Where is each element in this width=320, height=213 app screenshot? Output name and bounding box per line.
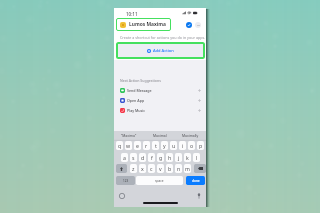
button[interactable]: v [157, 164, 164, 173]
staticText: h [168, 154, 172, 161]
staticText: Maximally [182, 133, 199, 138]
button[interactable]: k [184, 153, 191, 162]
staticText: e [136, 142, 139, 149]
staticText: f [151, 154, 153, 161]
staticText: v [159, 165, 162, 172]
staticText: Open App [127, 98, 145, 103]
button[interactable]: f [148, 153, 155, 162]
staticText: a [123, 154, 126, 161]
button[interactable]: Dictation [196, 193, 202, 199]
button[interactable]: Lumos Maxima [116, 18, 171, 31]
button[interactable]: “Maxima” [114, 131, 144, 140]
button[interactable]: d [139, 153, 146, 162]
button[interactable]: Shift [116, 164, 127, 173]
button[interactable]: q [116, 141, 123, 150]
button[interactable]: Send Message [120, 85, 201, 96]
button[interactable]: done [186, 176, 205, 185]
button[interactable]: x [139, 164, 146, 173]
button[interactable]: u [170, 141, 177, 150]
staticText: u [172, 142, 176, 149]
button[interactable]: o [188, 141, 195, 150]
staticText: “Maxima” [121, 133, 137, 138]
button[interactable]: s [130, 153, 137, 162]
staticText: l [196, 154, 198, 161]
button[interactable]: Backspace [194, 164, 206, 173]
button[interactable]: r [143, 141, 150, 150]
staticText: y [163, 142, 166, 149]
button[interactable]: n [175, 164, 182, 173]
button[interactable]: i [179, 141, 186, 150]
button[interactable]: c [148, 164, 155, 173]
button[interactable]: e [134, 141, 141, 150]
button[interactable]: Play Music [120, 105, 201, 116]
staticText: space [155, 179, 164, 183]
staticText: 10:11 [126, 11, 138, 17]
staticText: 123 [123, 179, 129, 183]
staticText: j [178, 154, 180, 161]
button[interactable]: t [152, 141, 159, 150]
staticText: m [185, 165, 190, 172]
button[interactable]: h [166, 153, 173, 162]
staticText: i [182, 142, 184, 149]
staticText: t [155, 142, 157, 149]
staticText: z [132, 165, 135, 172]
staticText: Create a shortcut for actions you do in … [120, 35, 208, 40]
button[interactable]: z [130, 164, 137, 173]
button[interactable]: Open App [120, 95, 201, 106]
button[interactable]: w [125, 141, 132, 150]
staticText: Add Action [153, 48, 174, 53]
staticText: b [168, 165, 172, 172]
button[interactable]: Done [186, 22, 192, 28]
staticText: Maximal [153, 133, 167, 138]
staticText: p [199, 142, 203, 149]
button[interactable]: a [121, 153, 128, 162]
staticText: s [132, 154, 135, 161]
staticText: x [141, 165, 144, 172]
staticText: n [177, 165, 181, 172]
button[interactable]: b [166, 164, 173, 173]
button[interactable]: Maximally [175, 131, 206, 140]
button[interactable]: j [175, 153, 182, 162]
button[interactable]: y [161, 141, 168, 150]
staticText: done [192, 179, 200, 183]
staticText: o [190, 142, 194, 149]
staticText: Send Message [127, 88, 152, 93]
staticText: w [126, 142, 131, 149]
staticText: r [145, 142, 148, 149]
staticText: Play Music [127, 108, 146, 113]
button[interactable]: Maximal [144, 131, 175, 140]
button[interactable]: 123 [116, 176, 135, 185]
button[interactable]: l [193, 153, 200, 162]
button[interactable]: More options [195, 22, 201, 28]
staticText: Next Action Suggestions [120, 78, 161, 83]
staticText: d [141, 154, 145, 161]
staticText: c [150, 165, 153, 172]
button[interactable]: p [197, 141, 204, 150]
staticText: g [159, 154, 163, 161]
staticText: Lumos Maxima [129, 21, 166, 28]
button[interactable]: space [136, 176, 183, 185]
staticText: k [186, 154, 189, 161]
button[interactable]: Add Action [118, 44, 203, 57]
button[interactable]: Emoji [119, 193, 125, 199]
button[interactable]: m [184, 164, 191, 173]
staticText: q [118, 142, 122, 149]
button[interactable]: g [157, 153, 164, 162]
